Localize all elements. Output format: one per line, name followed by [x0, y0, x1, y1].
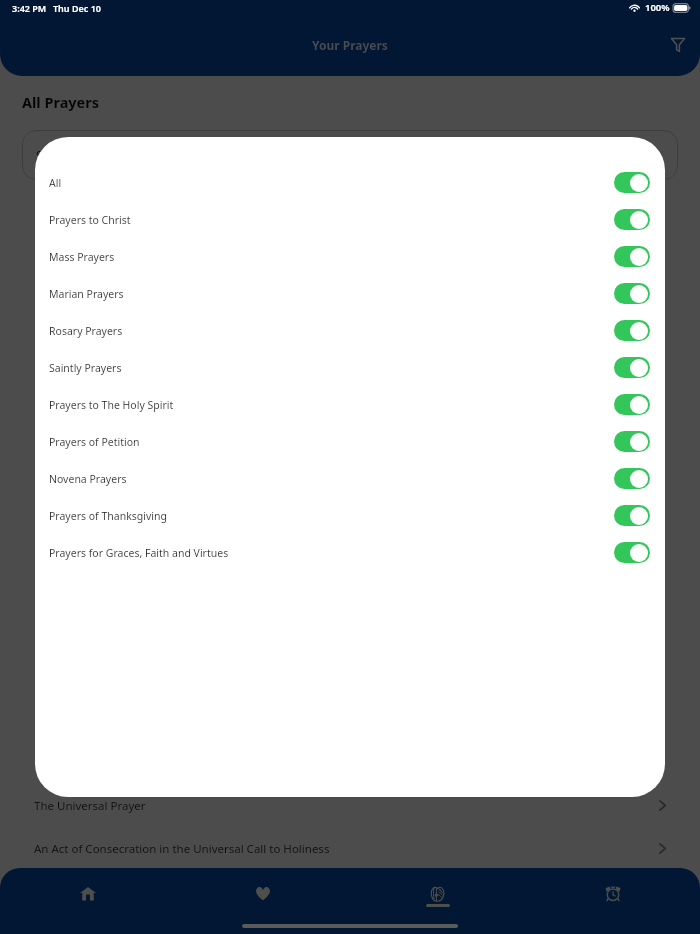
button[interactable]: The Universal Prayer	[0, 784, 700, 827]
staticText: Prayers to Christ	[49, 213, 131, 227]
button[interactable]: Toggle Marian Prayers	[614, 283, 650, 304]
staticText: Prayers to The Holy Spirit	[49, 398, 174, 412]
button[interactable]: Reminders	[525, 868, 700, 920]
button[interactable]	[0, 0, 700, 934]
button[interactable]: Marian Prayers	[35, 275, 665, 312]
button[interactable]: Saintly Prayers	[35, 349, 665, 386]
button[interactable]: Novena Prayers	[35, 460, 665, 497]
staticText: An Act of Consecration in the Universal …	[34, 841, 330, 857]
staticText: Saintly Prayers	[49, 361, 122, 375]
button[interactable]: Toggle All	[614, 172, 650, 193]
button[interactable]: Toggle Prayers of Petition	[614, 431, 650, 452]
button[interactable]: Mass Prayers	[35, 238, 665, 275]
staticText: Marian Prayers	[49, 287, 124, 301]
button[interactable]: Toggle Prayers to Christ	[614, 209, 650, 230]
button[interactable]: Prayers of Thanksgiving	[35, 497, 665, 534]
staticText: 100%	[645, 1, 670, 14]
button[interactable]: Prayers to The Holy Spirit	[35, 386, 665, 423]
staticText: The Universal Prayer	[34, 798, 146, 814]
button[interactable]: An Act of Consecration in the Universal …	[0, 827, 700, 870]
staticText: Your Prayers	[312, 37, 388, 53]
button[interactable]: Search	[22, 130, 678, 180]
button[interactable]: Rosary Prayers	[35, 312, 665, 349]
button[interactable]: Prayers for Graces, Faith and Virtues	[35, 534, 665, 571]
button[interactable]: Toggle Prayers to The Holy Spirit	[614, 394, 650, 415]
staticText: All Prayers	[22, 92, 100, 112]
button[interactable]: Toggle Mass Prayers	[614, 246, 650, 267]
staticText: Novena Prayers	[49, 472, 127, 486]
button[interactable]: Favorites	[175, 868, 350, 920]
staticText: Prayers for Graces, Faith and Virtues	[49, 546, 229, 560]
button[interactable]: Toggle Saintly Prayers	[614, 357, 650, 378]
button[interactable]: All	[35, 164, 665, 201]
button[interactable]: Prayers to Christ	[35, 201, 665, 238]
button[interactable]: Prayers	[350, 868, 525, 920]
button[interactable]: Prayers of Petition	[35, 423, 665, 460]
staticText: Rosary Prayers	[49, 324, 123, 338]
button[interactable]: Toggle Rosary Prayers	[614, 320, 650, 341]
staticText: Prayers of Petition	[49, 435, 140, 449]
button[interactable]: Filter	[664, 30, 692, 58]
staticText: 3:42 PM	[12, 2, 47, 14]
button[interactable]: Home	[0, 868, 175, 920]
button[interactable]: Toggle Novena Prayers	[614, 468, 650, 489]
button[interactable]: Toggle Prayers of Thanksgiving	[614, 505, 650, 526]
staticText: All	[49, 176, 62, 190]
staticText: Mass Prayers	[49, 250, 115, 264]
staticText: Prayers of Thanksgiving	[49, 509, 167, 523]
staticText: Search	[36, 147, 74, 163]
button[interactable]: Toggle Prayers for Graces, Faith and Vir…	[614, 542, 650, 563]
staticText: Thu Dec 10	[53, 2, 101, 14]
